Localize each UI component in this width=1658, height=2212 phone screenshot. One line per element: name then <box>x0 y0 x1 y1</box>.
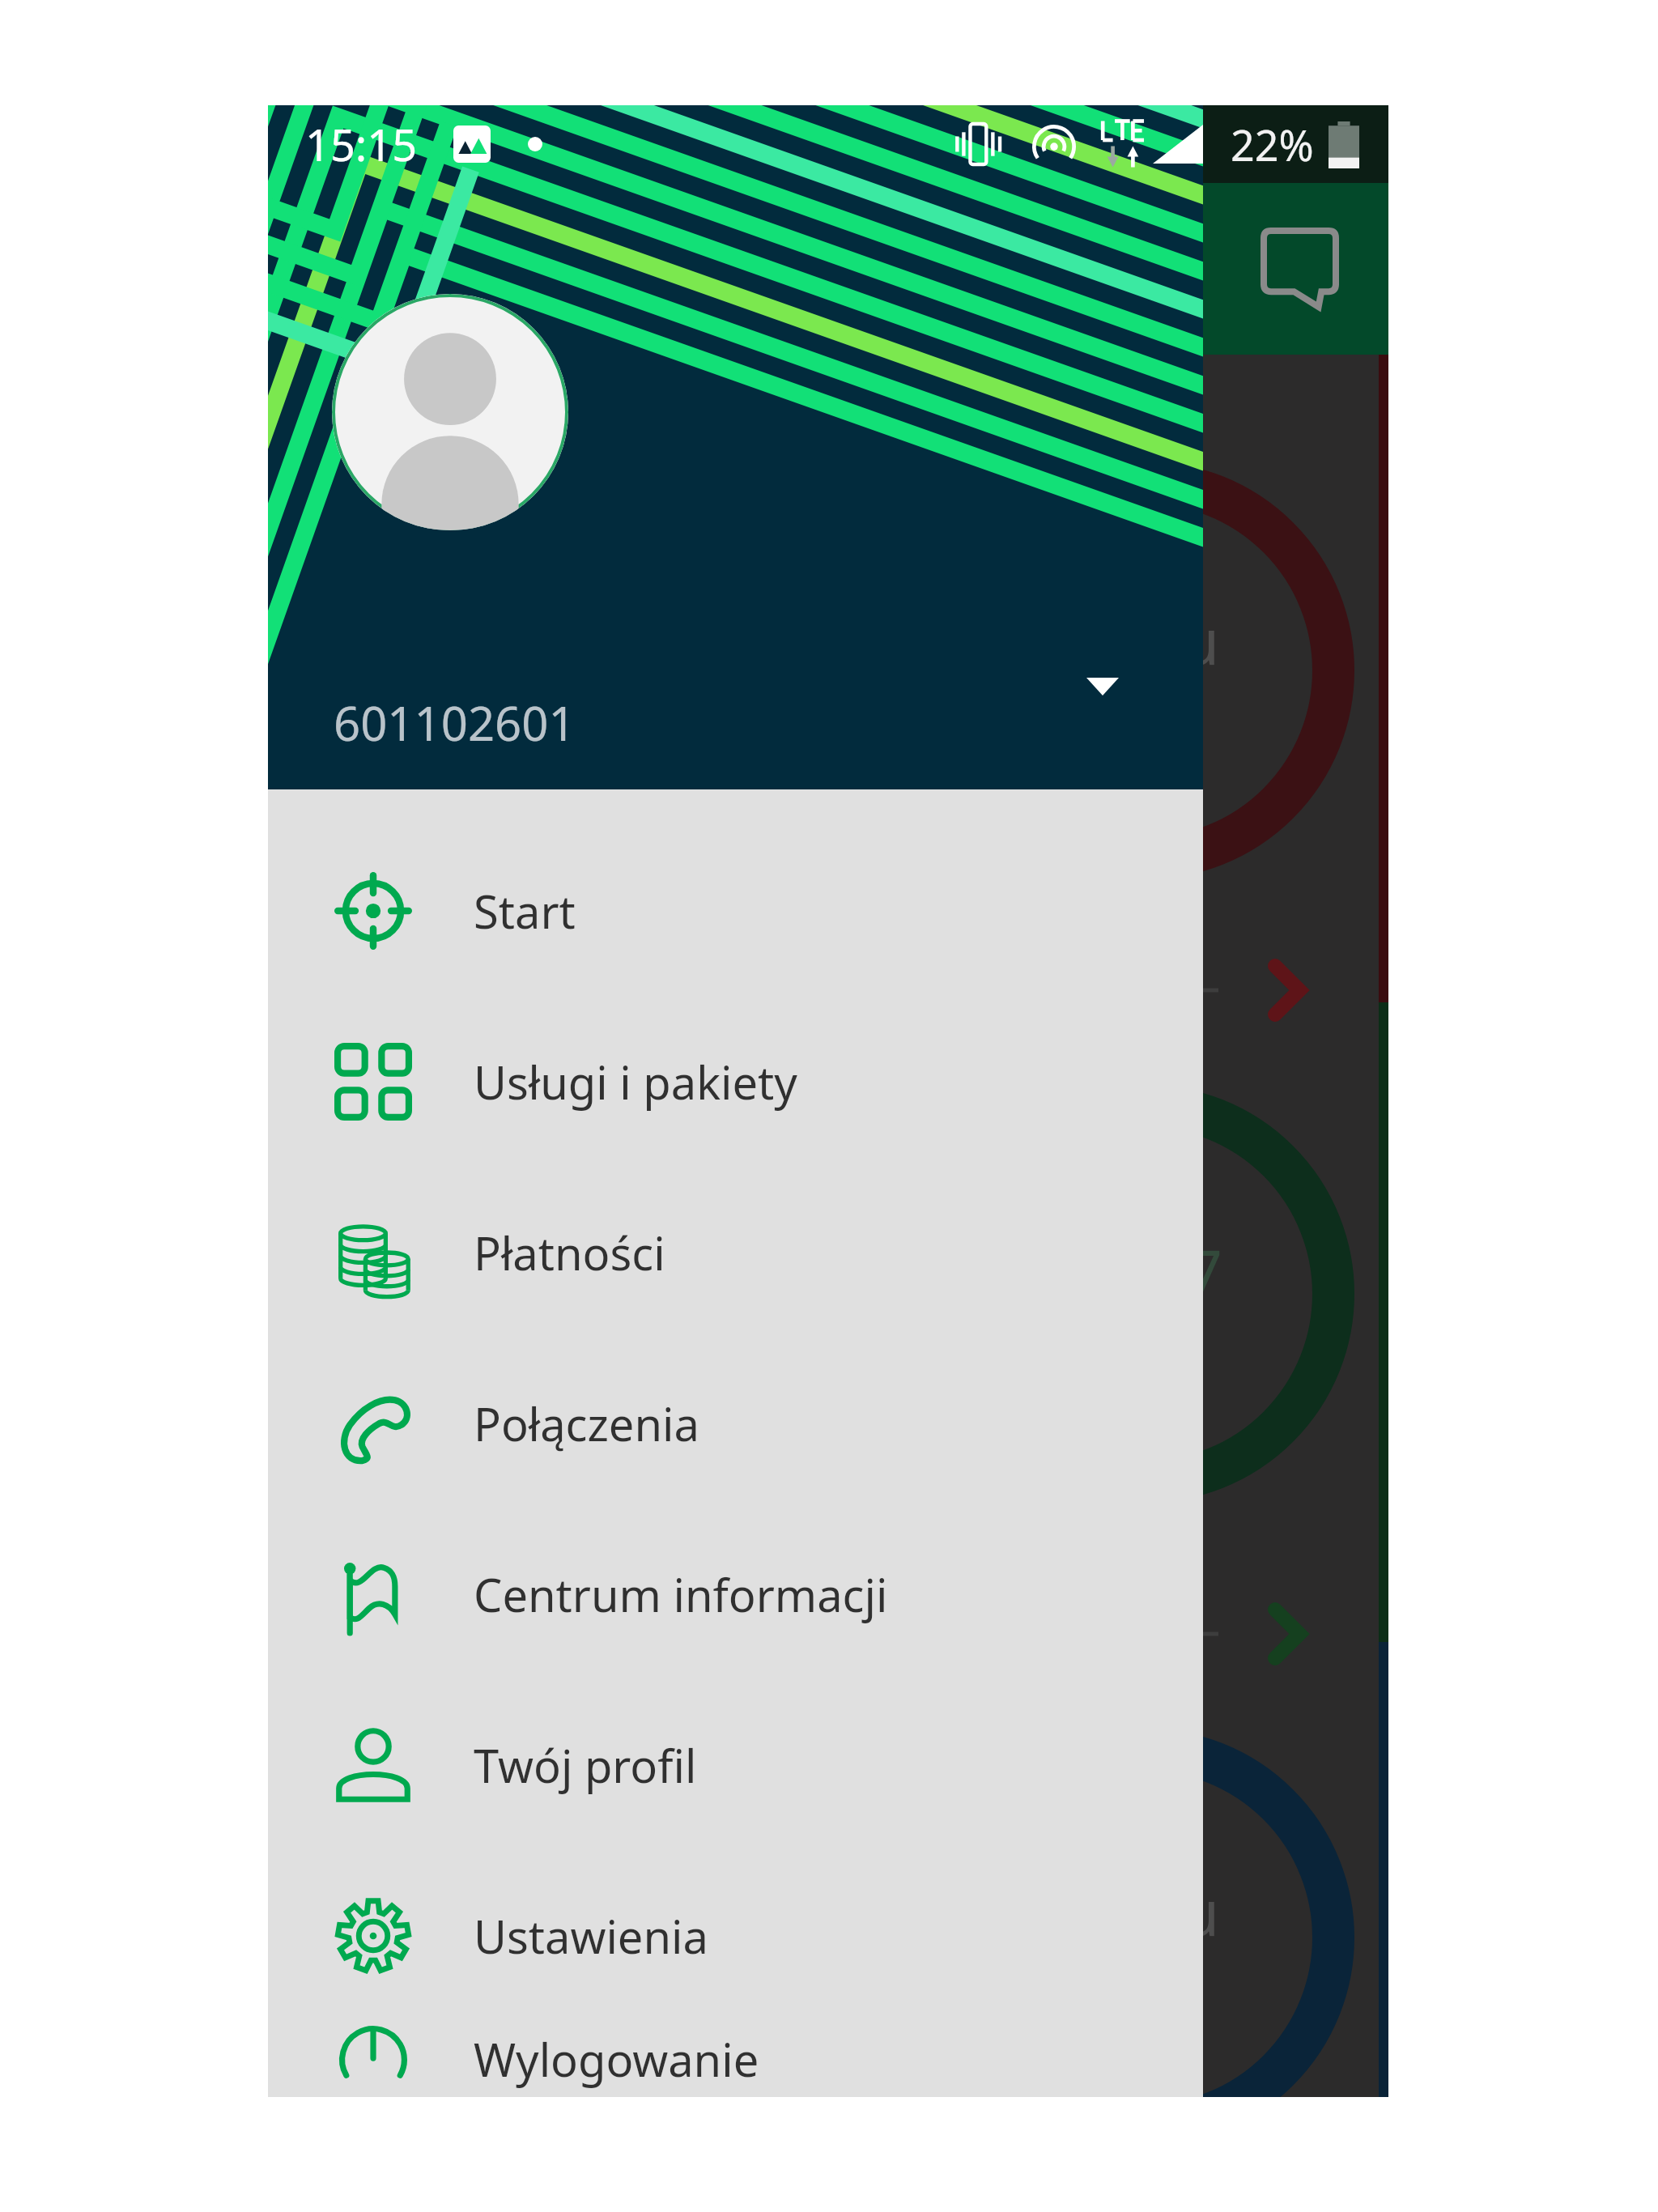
staticText: Połączenia <box>474 1393 699 1454</box>
staticText: Usługi i pakiety <box>474 1051 797 1112</box>
staticText: tu <box>1158 1869 1220 1955</box>
staticText: 22% <box>1231 116 1314 173</box>
staticText: 601102601 <box>334 691 576 755</box>
button[interactable]: Switch account <box>1058 642 1147 731</box>
staticText: 8.7 <box>1133 1229 1223 1315</box>
staticText: tu <box>1158 598 1220 683</box>
button[interactable]: Połączenia <box>268 1338 1203 1508</box>
staticText: Płatności <box>474 1222 665 1283</box>
staticText: Twój profil <box>474 1734 697 1796</box>
staticText: Ustawienia <box>474 1905 708 1967</box>
staticText: Start <box>474 880 576 942</box>
button[interactable]: Płatności <box>268 1167 1203 1338</box>
button[interactable]: Ustawienia <box>268 1850 1203 2021</box>
button[interactable]: Wylogowanie <box>268 2021 1203 2097</box>
staticText: 15:15 <box>305 114 418 174</box>
button[interactable]: Centrum informacji <box>268 1508 1203 1679</box>
button[interactable]: Profile photo <box>332 294 568 530</box>
staticText: Wylogowanie <box>474 2028 759 2090</box>
button[interactable]: Start <box>268 825 1203 996</box>
button[interactable]: Messages <box>1239 208 1360 330</box>
staticText: Centrum informacji <box>474 1563 888 1625</box>
button[interactable]: Usługi i pakiety <box>268 996 1203 1167</box>
button[interactable]: Twój profil <box>268 1679 1203 1850</box>
